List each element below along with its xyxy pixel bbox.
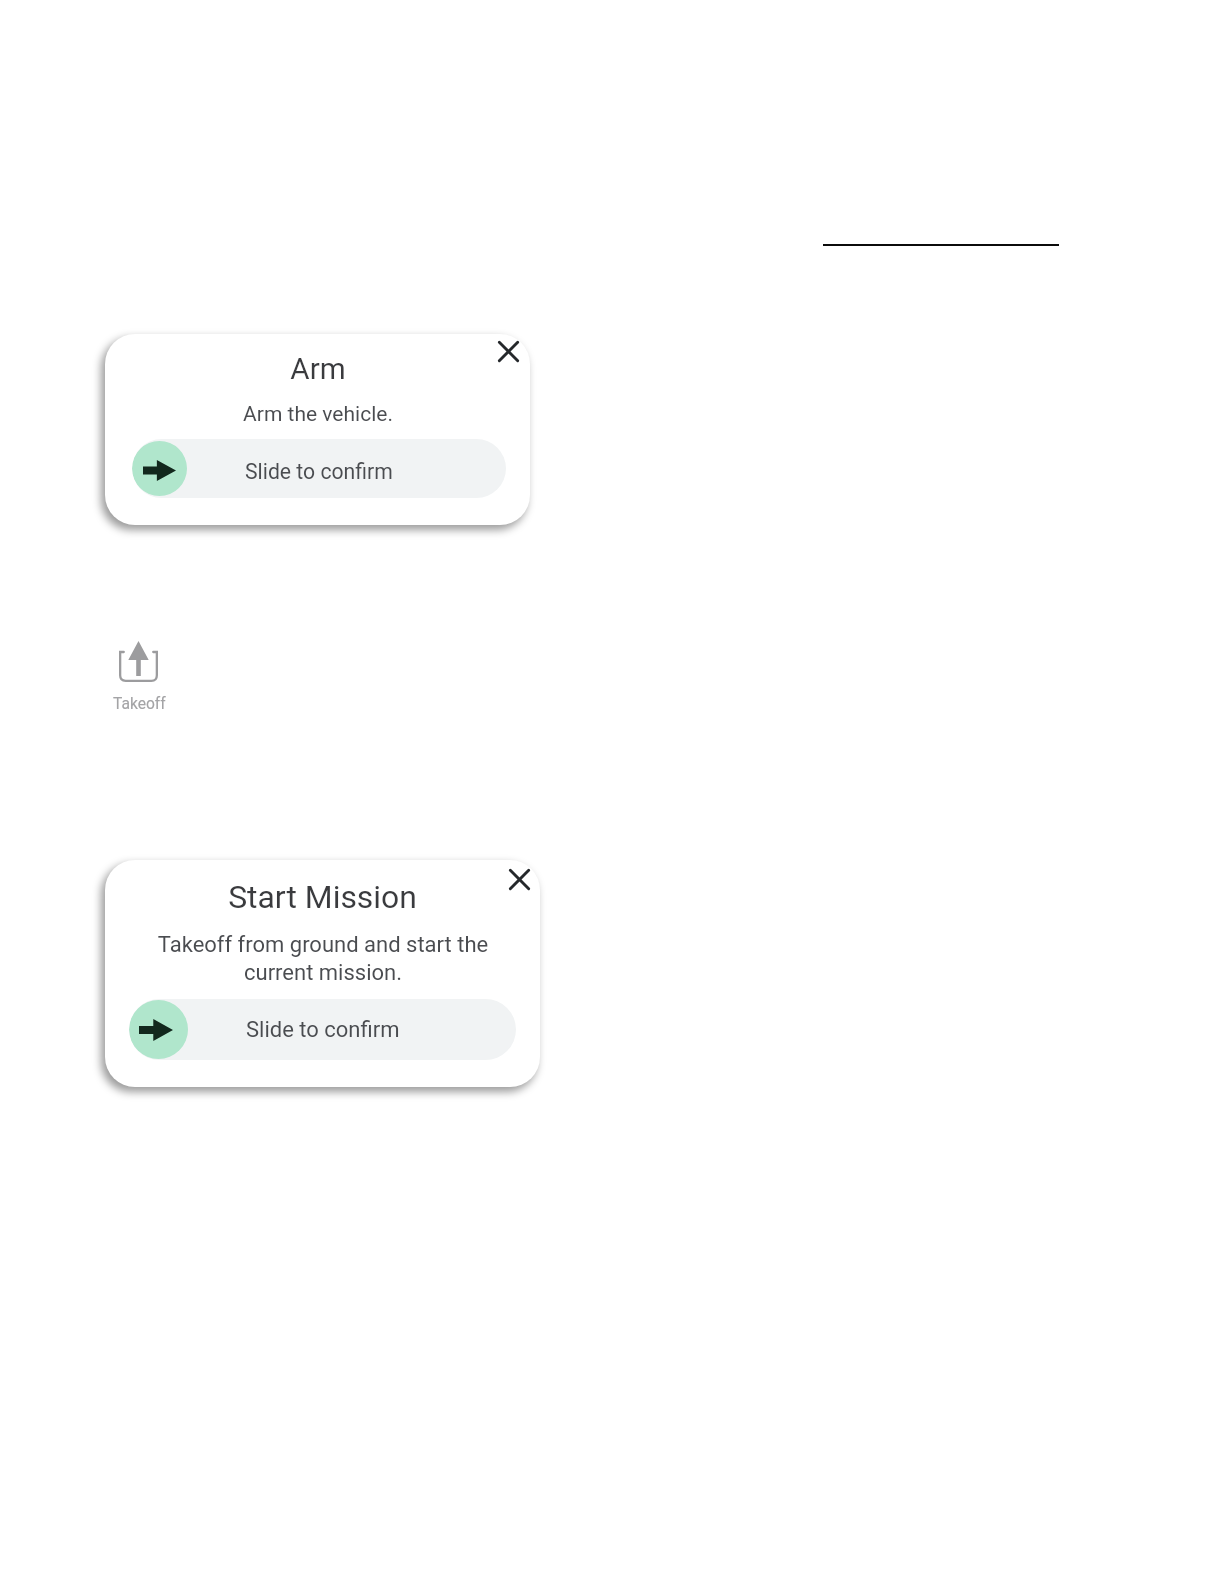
staticText: Takeoff from ground and start the curren… (150, 932, 496, 985)
staticText: Takeoff (113, 695, 166, 713)
staticText: Slide to confirm (246, 1017, 400, 1043)
button[interactable]: Close (486, 334, 530, 373)
staticText: Slide to confirm (245, 459, 393, 484)
button[interactable]: Slide to confirm (132, 439, 506, 498)
button[interactable]: Takeoff (99, 636, 179, 718)
staticText: Arm (290, 352, 346, 387)
button[interactable]: Slide to confirm (129, 999, 516, 1060)
staticText: Arm the vehicle. (243, 402, 393, 427)
button[interactable]: Close (497, 860, 540, 901)
staticText: Start Mission (228, 878, 417, 915)
